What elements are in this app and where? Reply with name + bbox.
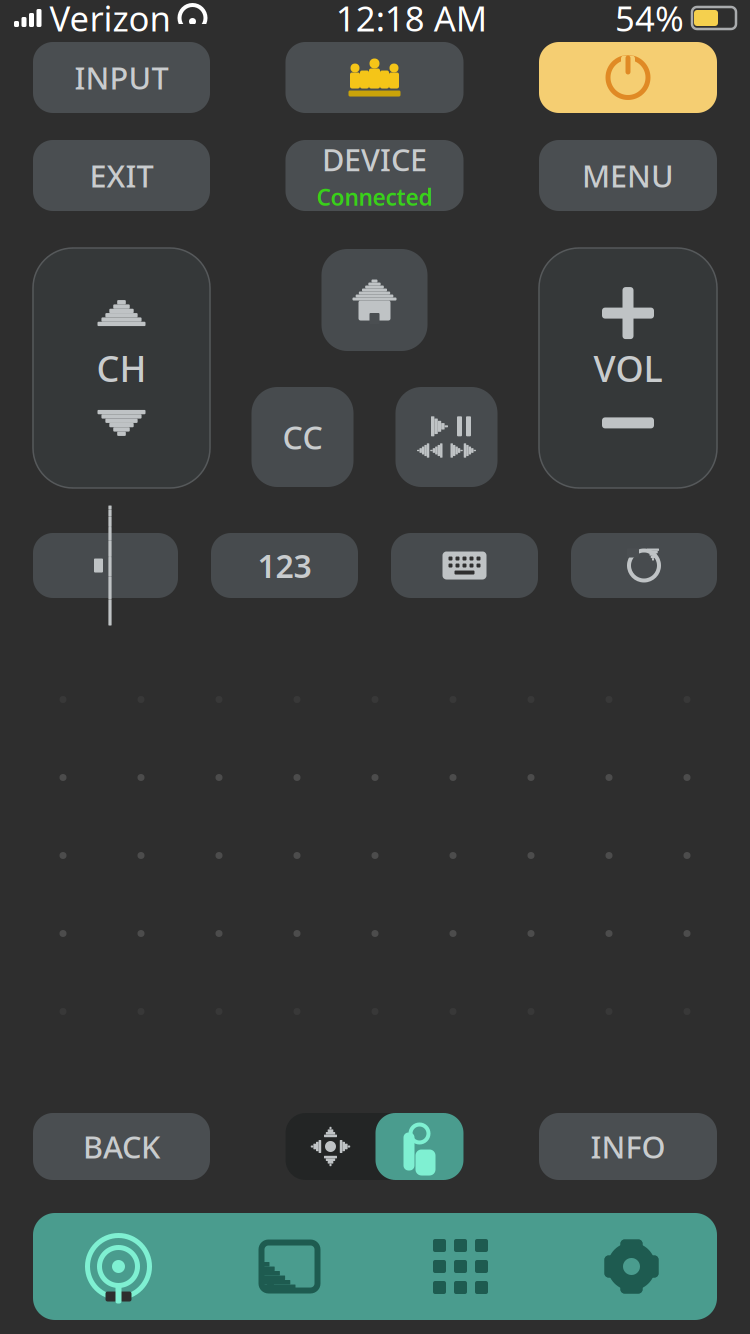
staticText: 54% xyxy=(615,0,684,41)
button[interactable]: INFO xyxy=(539,1113,717,1180)
button[interactable]: 123 xyxy=(211,533,358,598)
button[interactable]: Channel up xyxy=(61,282,181,344)
staticText: VOL xyxy=(593,344,662,392)
button[interactable]: Power xyxy=(539,42,717,113)
button[interactable]: Settings xyxy=(546,1213,717,1320)
staticText: INPUT xyxy=(74,57,168,98)
staticText: INFO xyxy=(590,1126,665,1167)
button[interactable]: Premium xyxy=(285,42,463,113)
staticText: EXIT xyxy=(89,155,153,196)
button[interactable]: EXIT xyxy=(33,140,210,211)
button[interactable]: DEVICE xyxy=(285,140,463,211)
staticText: BACK xyxy=(83,1126,160,1167)
button[interactable]: BACK xyxy=(33,1113,210,1180)
staticText: Connected xyxy=(316,182,432,212)
button[interactable]: Touchpad mode xyxy=(375,1113,463,1180)
button[interactable]: Rotate xyxy=(571,533,717,598)
staticText: MENU xyxy=(582,155,674,196)
button[interactable]: Keyboard xyxy=(391,533,538,598)
button[interactable]: MENU xyxy=(539,140,717,211)
button[interactable]: Apps xyxy=(375,1213,546,1320)
staticText: DEVICE xyxy=(322,139,427,180)
button[interactable]: Cast xyxy=(204,1213,375,1320)
button[interactable]: D-pad mode xyxy=(285,1113,375,1180)
button[interactable]: Volume down xyxy=(568,392,688,454)
staticText: Verizon xyxy=(49,0,170,41)
staticText: 12:18 AM xyxy=(336,0,487,41)
button[interactable]: CC xyxy=(251,387,353,487)
button[interactable]: Remote xyxy=(33,1213,204,1320)
button[interactable]: Mute xyxy=(33,533,178,598)
staticText: CC xyxy=(282,416,322,458)
button[interactable]: Volume up xyxy=(568,282,688,344)
button[interactable]: Home xyxy=(321,249,427,351)
button[interactable]: Channel down xyxy=(61,392,181,454)
button[interactable]: Playback controls xyxy=(395,387,497,487)
staticText: 123 xyxy=(257,544,311,587)
staticText: CH xyxy=(96,344,146,392)
button[interactable]: INPUT xyxy=(33,42,210,113)
